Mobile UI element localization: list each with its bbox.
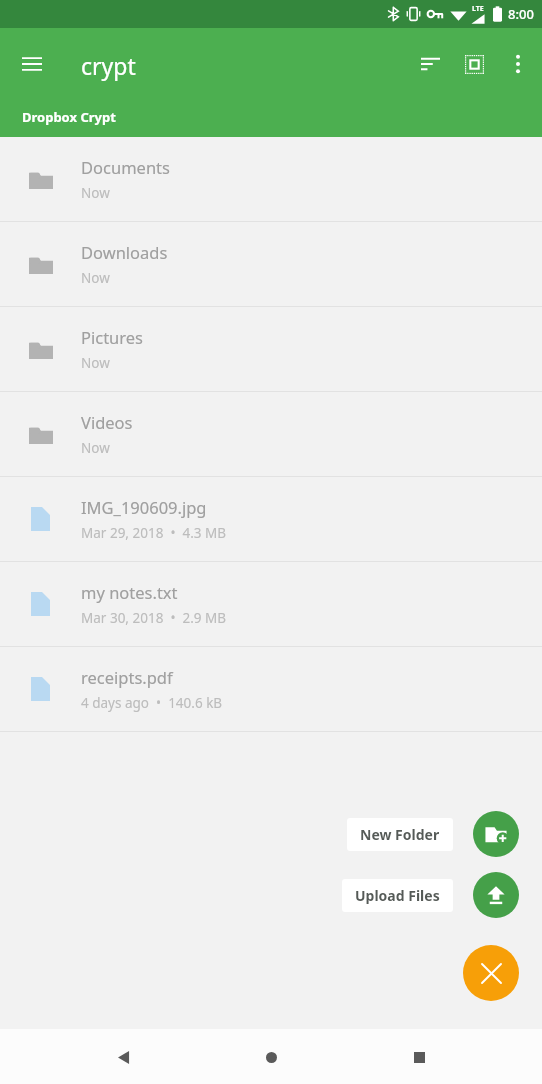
staticText: Dropbox Crypt <box>22 108 116 126</box>
staticText: 4 days ago • 140.6 kB <box>81 694 223 712</box>
staticText: Videos <box>81 411 133 433</box>
staticText: IMG_190609.jpg <box>81 496 207 518</box>
staticText: Now <box>81 439 110 457</box>
button[interactable]: Recent apps <box>395 1033 443 1081</box>
staticText: New Folder <box>360 825 440 844</box>
staticText: crypt <box>81 50 136 81</box>
button[interactable]: Sort <box>408 42 452 86</box>
staticText: Now <box>81 269 110 287</box>
button[interactable]: Home <box>247 1033 295 1081</box>
staticText: my notes.txt <box>81 581 178 603</box>
button[interactable]: Videos <box>0 392 542 477</box>
staticText: LTE <box>472 4 484 14</box>
button[interactable]: Upload Files <box>342 879 453 912</box>
button[interactable]: Upload Files <box>473 872 519 918</box>
button[interactable]: New Folder <box>473 811 519 857</box>
staticText: receipts.pdf <box>81 666 173 688</box>
staticText: Downloads <box>81 241 168 263</box>
staticText: Documents <box>81 156 170 178</box>
button[interactable]: Open navigation menu <box>10 42 54 86</box>
staticText: Now <box>81 184 110 202</box>
staticText: Mar 30, 2018 • 2.9 MB <box>81 609 227 627</box>
staticText: Pictures <box>81 326 144 348</box>
staticText: Mar 29, 2018 • 4.3 MB <box>81 524 227 542</box>
button[interactable]: Pictures <box>0 307 542 392</box>
staticText: Upload Files <box>355 886 440 905</box>
button[interactable]: More options <box>496 42 540 86</box>
staticText: 8:00 <box>508 5 534 23</box>
button[interactable]: my notes.txt <box>0 562 542 647</box>
button[interactable]: Back <box>100 1033 148 1081</box>
button[interactable]: Close menu <box>463 945 519 1001</box>
staticText: Now <box>81 354 110 372</box>
button[interactable]: Downloads <box>0 222 542 307</box>
button[interactable]: Documents <box>0 137 542 222</box>
button[interactable]: Select all <box>452 42 496 86</box>
button[interactable]: New Folder <box>347 818 453 851</box>
button[interactable]: IMG_190609.jpg <box>0 477 542 562</box>
button[interactable]: receipts.pdf <box>0 647 542 732</box>
